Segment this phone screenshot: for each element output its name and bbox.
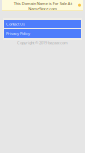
staticText: Privacy Policy (6, 31, 30, 36)
button[interactable]: Privacy Policy (4, 29, 81, 38)
staticText: Contact Us (6, 21, 25, 27)
staticText: This Domain Name is For Sale At NameStor… (13, 1, 71, 11)
staticText: Copyright © 2019 bazaar.com (17, 40, 68, 45)
button[interactable]: Contact Us (4, 20, 81, 28)
